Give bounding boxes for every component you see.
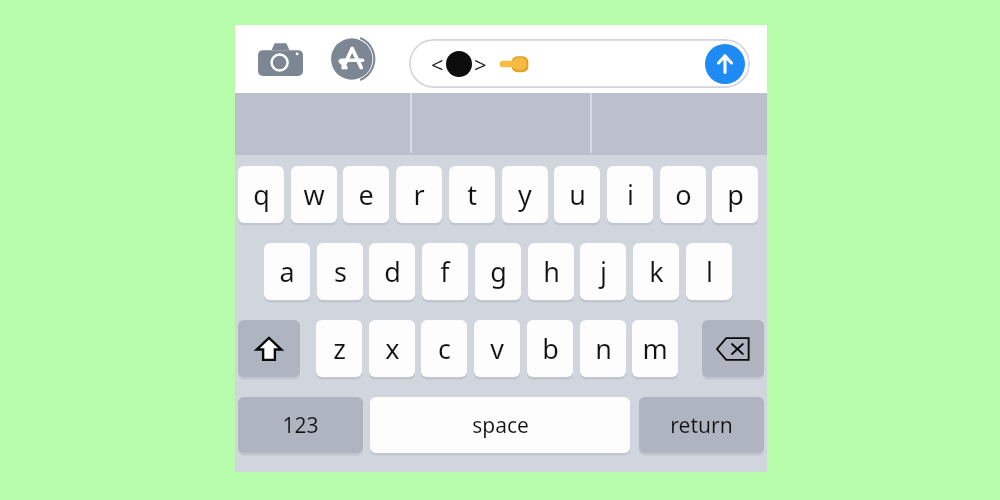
button[interactable]: g [475, 243, 521, 300]
button[interactable]: v [474, 320, 520, 377]
button[interactable]: Backspace [702, 320, 764, 377]
button[interactable]: u [554, 166, 600, 223]
staticText: o [675, 176, 692, 213]
button[interactable]: t [449, 166, 495, 223]
button[interactable]: App Store [327, 35, 383, 83]
staticText: space [472, 411, 529, 440]
staticText: w [303, 176, 325, 213]
staticText: l [706, 253, 713, 290]
button[interactable]: h [528, 243, 574, 300]
button[interactable]: d [369, 243, 415, 300]
button[interactable]: return [639, 397, 764, 453]
button[interactable]: w [291, 166, 337, 223]
staticText: return [670, 411, 733, 440]
button[interactable]: Shift [238, 320, 300, 377]
button[interactable]: e [343, 166, 389, 223]
staticText: c [438, 330, 451, 367]
staticText: p [727, 176, 744, 213]
staticText: a [279, 253, 295, 290]
button[interactable]: z [316, 320, 362, 377]
staticText: e [358, 176, 374, 213]
button[interactable]: c [421, 320, 467, 377]
staticText: x [385, 330, 400, 367]
staticText: s [334, 253, 347, 290]
button[interactable]: f [422, 243, 468, 300]
staticText: q [253, 176, 270, 213]
button[interactable]: q [238, 166, 284, 223]
button[interactable]: space [370, 397, 630, 453]
staticText: v [490, 330, 504, 367]
staticText: r [413, 176, 425, 213]
staticText: j [600, 253, 607, 290]
staticText: n [595, 330, 612, 367]
button[interactable]: < [409, 39, 750, 88]
staticText: z [333, 330, 346, 367]
staticText: y [518, 176, 532, 213]
button[interactable]: j [580, 243, 626, 300]
button[interactable]: x [369, 320, 415, 377]
staticText: m [642, 330, 668, 367]
button[interactable]: 123 [238, 397, 363, 453]
staticText: b [542, 330, 559, 367]
button[interactable]: i [607, 166, 653, 223]
button[interactable]: y [502, 166, 548, 223]
button[interactable]: s [317, 243, 363, 300]
staticText: g [490, 253, 507, 290]
button[interactable]: r [396, 166, 442, 223]
staticText: > [474, 49, 487, 79]
staticText: < [431, 49, 444, 79]
staticText: d [384, 253, 401, 290]
button[interactable]: n [580, 320, 626, 377]
button[interactable]: l [686, 243, 732, 300]
staticText: 123 [282, 411, 319, 440]
staticText: h [543, 253, 560, 290]
staticText: k [649, 253, 664, 290]
button[interactable]: m [632, 320, 678, 377]
button[interactable]: o [660, 166, 706, 223]
button[interactable]: k [633, 243, 679, 300]
staticText: f [440, 253, 450, 290]
button[interactable]: a [264, 243, 310, 300]
staticText: u [569, 176, 586, 213]
button[interactable]: b [527, 320, 573, 377]
button[interactable]: Camera [255, 39, 305, 79]
button[interactable]: Send [705, 44, 745, 84]
button[interactable]: p [712, 166, 758, 223]
staticText: t [467, 176, 477, 213]
staticText: i [627, 176, 634, 213]
